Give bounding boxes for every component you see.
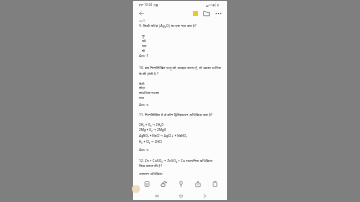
staticText: ◤◤ 10:24 ◔■ [139,3,159,7]
staticText: 9. किसी कोन्फ्र (Ag₂O) का एक नाम क्या है… [139,23,197,28]
staticText: प्रश्न 9 [139,20,145,23]
staticText: 2Mg + O₂ → 2MgO [139,128,166,132]
staticText: लोहा [139,86,146,90]
staticText: छैती [139,82,145,86]
button[interactable]: Bookmark [190,8,201,19]
button[interactable]: Markup [142,179,151,188]
button[interactable]: Crop [176,179,185,188]
staticText: Ans -1 [139,54,149,58]
staticText: घी [142,49,145,53]
button[interactable]: Back [136,8,147,19]
button[interactable]: Back [199,191,208,200]
staticText: किस प्रकार की है? [139,164,163,168]
staticText: AgNO₃ + NaCl → AgCl↓ + NaNO₃ [139,134,188,138]
staticText: 2H₂ + O₂ → 2H₂O [139,123,164,127]
staticText: उपचयन अभिक्रिया [139,172,163,176]
button[interactable]: Home [176,191,185,200]
staticText: H₂ + Cl₂ → 2HCl [139,140,162,144]
staticText: 10. सब निम्नलिखित धातु को अवक्षय करता है… [139,66,222,70]
button[interactable]: More options [213,8,224,19]
staticText: लामशिक रामला [139,91,159,95]
button[interactable]: Recents [152,191,161,200]
staticText: ताम [139,96,144,100]
button[interactable]: Delete [210,179,219,188]
staticText: खो [142,39,146,43]
staticText: ▃▫▫●▏▮ [206,3,219,6]
button[interactable]: Move to folder [201,8,212,19]
button[interactable]: Rotate [159,179,168,188]
staticText: Ans -c [139,103,149,107]
staticText: 12. Zn + CuSO₄ → ZnSO₄ + Cu रसायनिक अभिक… [139,158,213,163]
staticText: कै की होती है ? [139,72,159,76]
staticText: ग्रस [142,44,147,48]
staticText: Ans -c [139,148,149,152]
button[interactable]: Share [193,179,202,188]
staticText: कु [142,34,145,38]
staticText: 11. निम्नलिखित में से कौन द्विविस्थापन अ… [139,113,213,117]
